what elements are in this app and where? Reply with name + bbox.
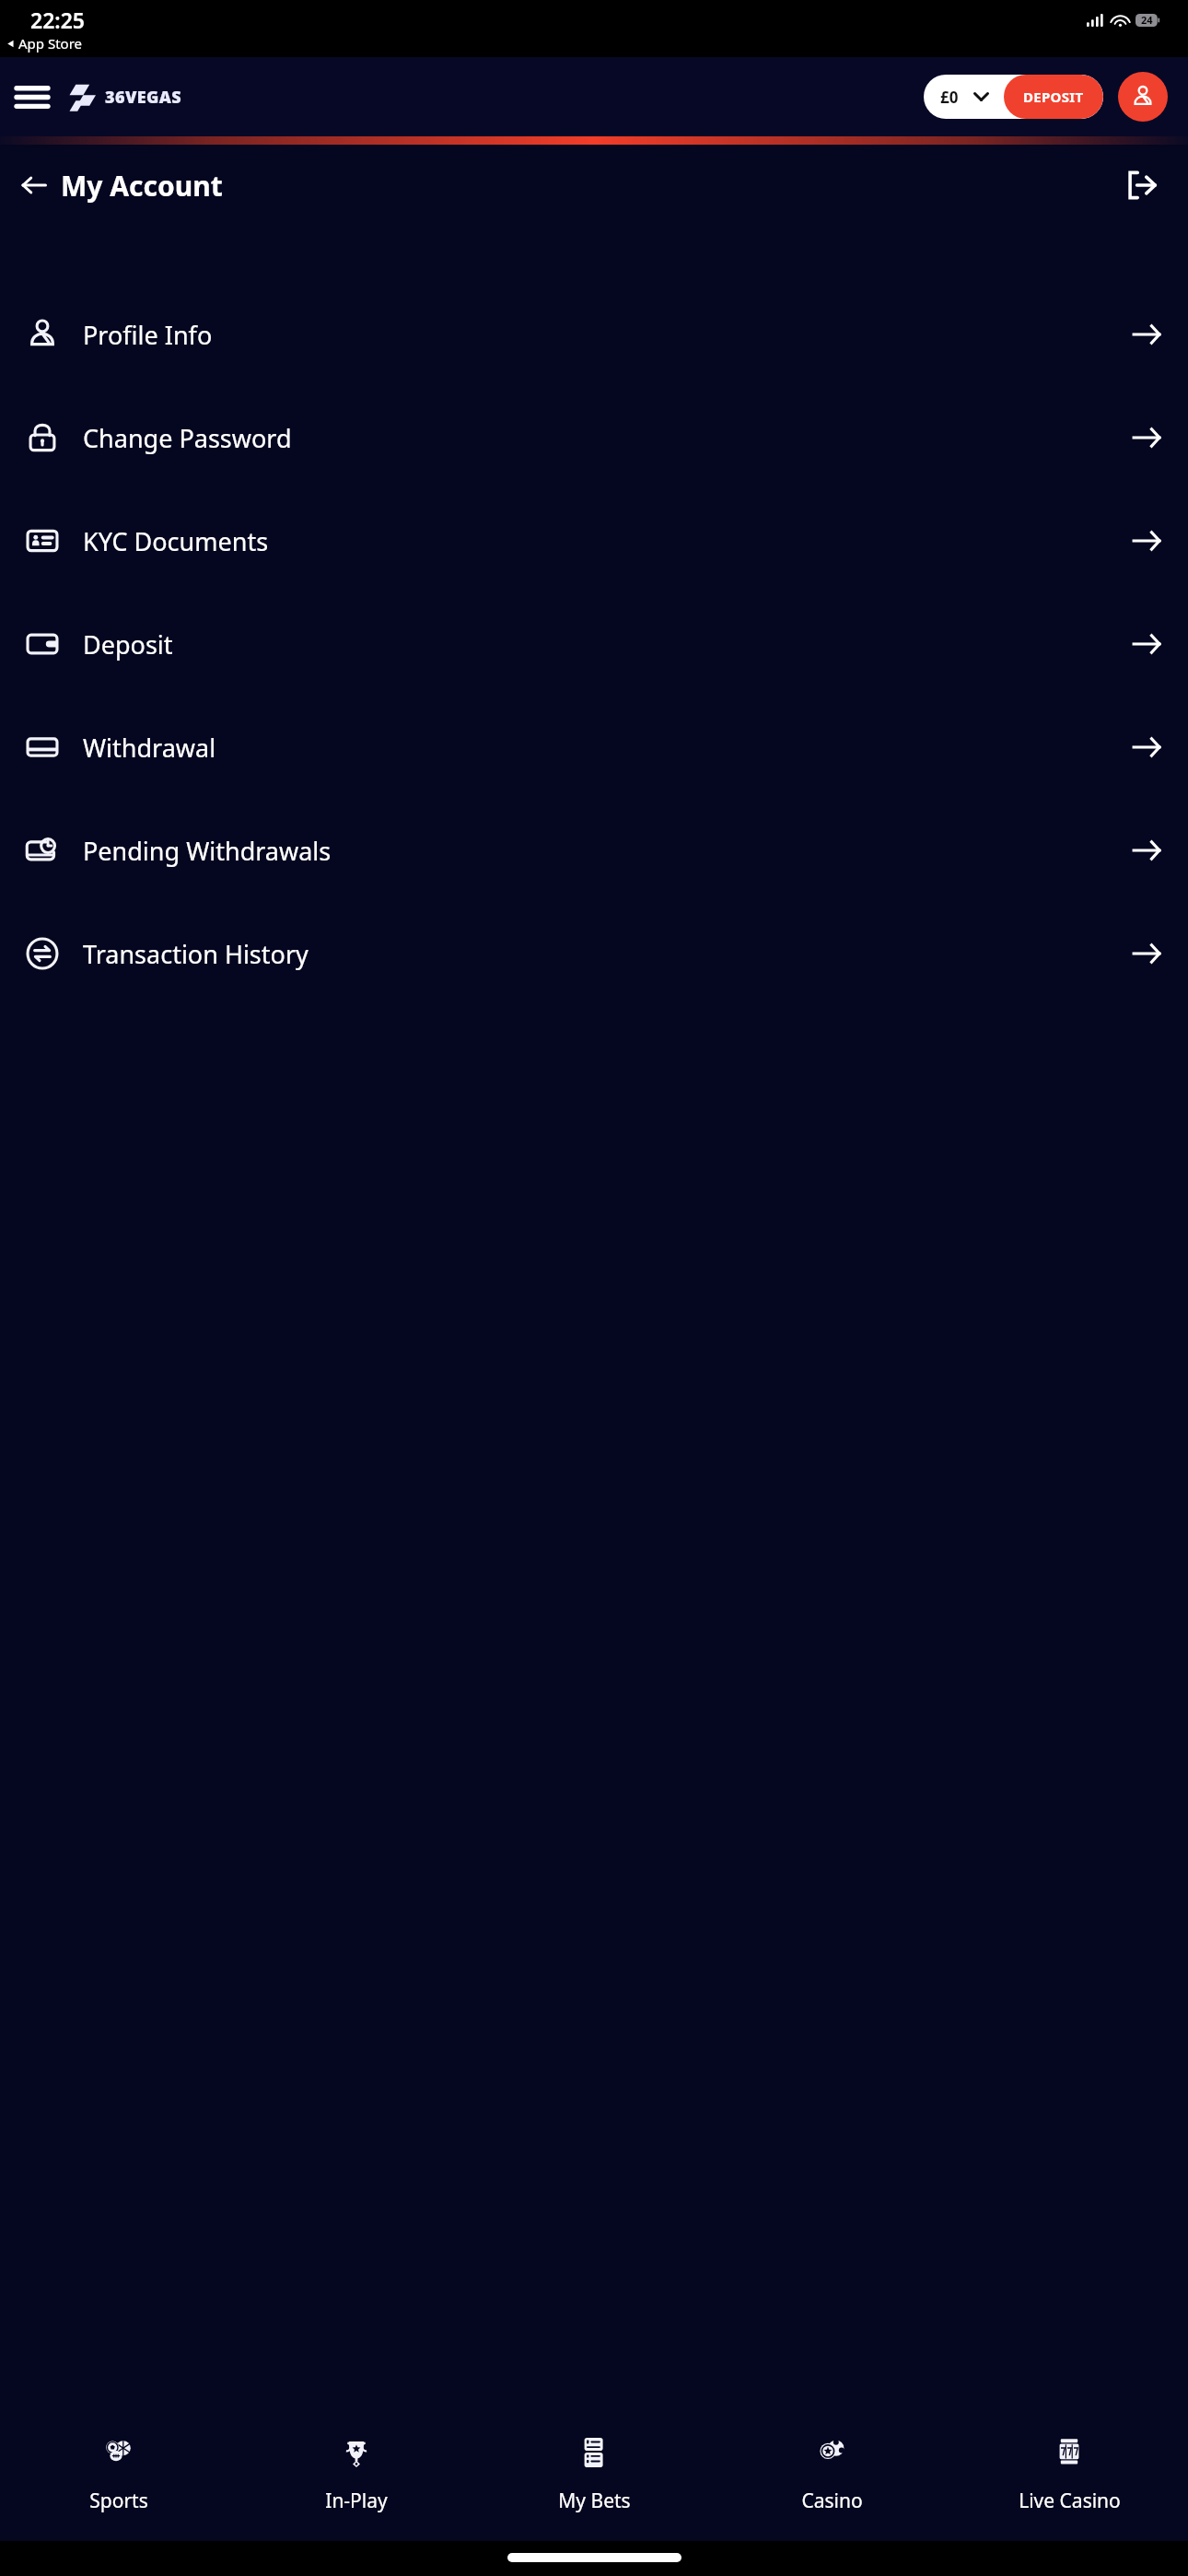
button[interactable]: DEPOSIT	[1004, 75, 1103, 119]
button[interactable]: Change Password	[0, 386, 1188, 489]
button[interactable]: Sports	[0, 2406, 238, 2541]
staticText: £0	[940, 87, 959, 108]
button[interactable]: Withdrawal	[0, 696, 1188, 799]
other: Back	[11, 163, 55, 207]
button[interactable]: Menu	[5, 69, 60, 124]
button[interactable]: KYC Documents	[0, 489, 1188, 592]
staticText: 22:25	[30, 6, 85, 34]
staticText: Deposit	[83, 627, 1131, 662]
staticText: App Store	[18, 34, 83, 53]
button[interactable]: Pending Withdrawals	[0, 799, 1188, 902]
button[interactable]: Profile Info	[0, 283, 1188, 386]
staticText: Transaction History	[83, 937, 1131, 971]
button[interactable]: Account	[1118, 72, 1168, 122]
staticText: Pending Withdrawals	[83, 834, 1131, 868]
staticText: My Account	[61, 167, 223, 205]
button[interactable]: Back	[11, 163, 223, 207]
button[interactable]: My Bets	[475, 2406, 713, 2541]
button[interactable]: Live Casino	[950, 2406, 1188, 2541]
staticText: 24	[1141, 13, 1153, 27]
staticText: Change Password	[83, 421, 1131, 455]
staticText: KYC Documents	[83, 524, 1131, 558]
button[interactable]: £0	[924, 75, 1004, 119]
staticText: Casino	[801, 2488, 863, 2514]
staticText: Live Casino	[1019, 2488, 1121, 2514]
staticText: Profile Info	[83, 318, 1131, 352]
button[interactable]: Deposit	[0, 592, 1188, 696]
staticText: My Bets	[558, 2488, 631, 2514]
button[interactable]: 36VEGAS	[67, 83, 182, 111]
staticText: 36VEGAS	[105, 86, 182, 109]
button[interactable]: Casino	[713, 2406, 950, 2541]
staticText: Withdrawal	[83, 731, 1131, 765]
button[interactable]: Log out	[1116, 159, 1168, 211]
button[interactable]: Transaction History	[0, 902, 1188, 1005]
staticText: Sports	[89, 2488, 148, 2514]
staticText: DEPOSIT	[1023, 88, 1084, 106]
staticText: In-Play	[325, 2488, 388, 2514]
button[interactable]: In-Play	[238, 2406, 475, 2541]
